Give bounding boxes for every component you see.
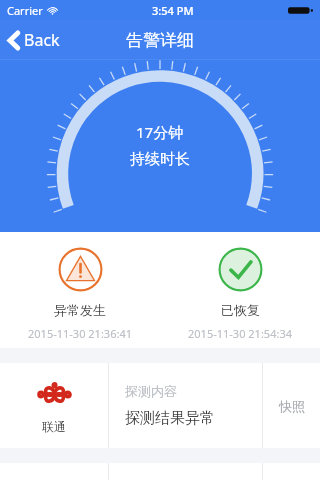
staticText: 联通: [42, 419, 66, 434]
button[interactable]: China Unicom: [0, 363, 108, 448]
staticText: 探测结果异常: [125, 409, 215, 428]
other: Recovered: [218, 247, 263, 292]
staticText: 异常发生: [54, 302, 106, 318]
button[interactable]: 探测内容: [109, 363, 262, 448]
button[interactable]: Alarm occurred: [0, 232, 160, 348]
staticText: 探测内容: [125, 383, 177, 399]
staticText: Carrier: [7, 3, 43, 18]
staticText: 17分钟: [136, 122, 184, 142]
other: China Unicom: [38, 378, 71, 411]
staticText: 快照: [279, 398, 305, 414]
staticText: 告警详细: [126, 30, 194, 51]
staticText: Back: [24, 29, 60, 51]
button[interactable]: 快照: [263, 363, 320, 448]
staticText: 2015-11-30 21:54:34: [188, 326, 292, 341]
button[interactable]: Recovered: [160, 232, 320, 348]
staticText: 3:54 PM: [152, 3, 194, 18]
button[interactable]: Back: [0, 22, 72, 58]
staticText: 持续时长: [130, 150, 190, 169]
staticText: 2015-11-30 21:36:41: [28, 326, 132, 341]
staticText: 已恢复: [221, 302, 260, 318]
other: Alarm occurred: [58, 247, 103, 292]
